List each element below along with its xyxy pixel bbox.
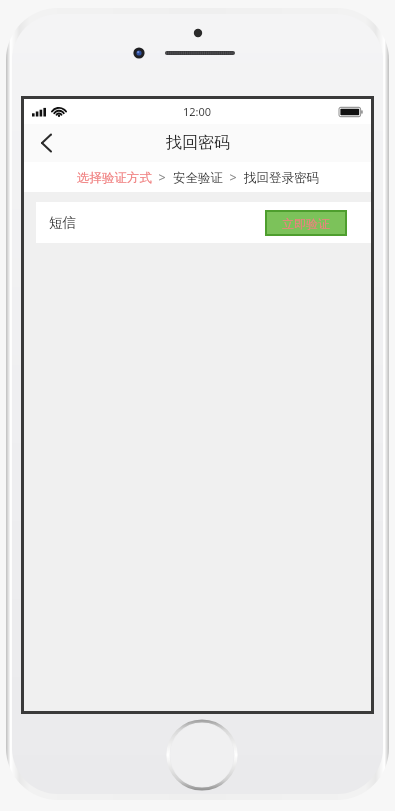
- other: Home: [163, 716, 241, 794]
- staticText: 12:00: [183, 104, 212, 119]
- staticText: 短信: [49, 214, 76, 231]
- staticText: >: [152, 169, 173, 186]
- staticText: 立即验证: [282, 216, 330, 231]
- button[interactable]: 立即验证: [265, 210, 347, 236]
- staticText: 选择验证方式: [77, 170, 152, 186]
- staticText: 找回登录密码: [244, 170, 319, 186]
- staticText: 找回密码: [166, 133, 230, 153]
- button[interactable]: Back: [24, 124, 68, 162]
- staticText: 安全验证: [173, 170, 223, 186]
- button[interactable]: 短信: [36, 202, 371, 243]
- staticText: >: [223, 169, 244, 186]
